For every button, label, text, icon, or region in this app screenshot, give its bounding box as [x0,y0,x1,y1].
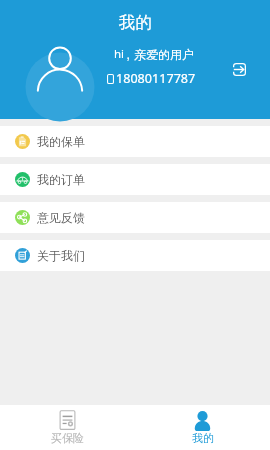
button[interactable]: 关于我们 [0,240,270,271]
staticText: 我的 [192,431,214,445]
button[interactable]: 我的订单 [0,164,270,195]
staticText: 18080117787 [116,70,196,87]
button[interactable]: 我的保单 [0,126,270,157]
staticText: ，亲爱的用户 [122,47,194,62]
button[interactable]: 我的 [135,405,270,450]
button[interactable]: 意见反馈 [0,202,270,233]
staticText: 关于我们 [37,248,85,263]
button[interactable]: 买保险 [0,405,135,450]
staticText: 我的保单 [37,134,85,149]
staticText: 买保险 [51,431,84,445]
staticText: 我的 [119,12,152,33]
button[interactable]: Log out [233,63,246,76]
staticText: 意见反馈 [37,210,85,225]
staticText: hi [114,46,125,62]
staticText: 我的订单 [37,172,85,187]
